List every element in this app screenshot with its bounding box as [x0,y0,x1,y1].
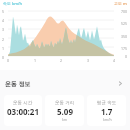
staticText: 175 [121,46,128,51]
staticText: 고도 m [114,1,127,6]
staticText: 3 [87,58,90,63]
button[interactable]: 운동 시간 [4,95,42,126]
button[interactable]: 운동 거리 [45,95,84,126]
staticText: 평균 속도 [97,99,117,105]
staticText: 1 [34,58,37,63]
staticText: 운동 정보 [5,80,31,88]
staticText: 5 [2,9,5,14]
staticText: 0 [7,58,10,63]
staticText: 350 [121,34,128,39]
staticText: 3 [2,27,5,32]
staticText: 속도 km/h [3,1,23,6]
staticText: 4 [2,18,5,23]
staticText: 2 [60,58,63,63]
staticText: 1 [2,46,5,51]
other: More [117,80,124,87]
staticText: 0 [125,54,128,59]
staticText: 525 [121,21,128,26]
button[interactable]: 운동 정보 [0,75,130,92]
staticText: 4 [113,58,116,63]
staticText: km/h [103,117,112,122]
staticText: km [62,117,68,122]
staticText: 운동 시간 [13,99,33,105]
staticText: 0 [2,55,5,60]
button[interactable]: 평균 속도 [87,95,126,126]
staticText: 1.7 [101,106,113,117]
staticText: 700 [121,9,128,14]
staticText: 5.09 [57,106,73,117]
staticText: 03:00:21 [7,106,39,117]
staticText: 2 [2,37,5,42]
staticText: 운동 거리 [55,99,75,105]
